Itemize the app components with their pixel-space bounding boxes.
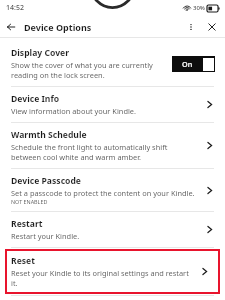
button[interactable]: Device Info xyxy=(0,87,225,122)
staticText: Show the cover of what you are currently… xyxy=(11,60,164,80)
staticText: 14:52 xyxy=(6,3,24,13)
staticText: Warmth Schedule xyxy=(11,129,87,141)
staticText: Restart your Kindle. xyxy=(11,231,80,241)
button[interactable]: Close xyxy=(201,16,223,37)
staticText: View information about your Kindle. xyxy=(11,106,136,116)
button[interactable]: Reset xyxy=(5,249,220,294)
staticText: Restart xyxy=(11,218,43,230)
button[interactable]: Restart xyxy=(0,212,225,247)
button[interactable]: Display Cover xyxy=(0,41,225,86)
staticText: 30% xyxy=(193,4,205,12)
staticText: On xyxy=(182,59,193,69)
button[interactable]: More options xyxy=(181,17,201,37)
staticText: Reset xyxy=(11,255,35,267)
button[interactable]: Warmth Schedule xyxy=(0,123,225,168)
staticText: Set a passcode to protect the content on… xyxy=(11,188,195,198)
staticText: Display Cover xyxy=(11,47,70,59)
button[interactable]: Device Passcode xyxy=(0,169,225,211)
staticText: Reset your Kindle to its original settin… xyxy=(11,268,192,288)
staticText: Device Options xyxy=(24,21,92,33)
button[interactable]: Display Cover toggle, On xyxy=(172,56,215,72)
staticText: Device Info xyxy=(11,93,60,105)
staticText: Schedule the front light to automaticall… xyxy=(11,142,197,162)
staticText: NOT ENABLED xyxy=(11,198,48,205)
staticText: Device Passcode xyxy=(11,175,82,187)
button[interactable]: Back xyxy=(0,16,21,37)
